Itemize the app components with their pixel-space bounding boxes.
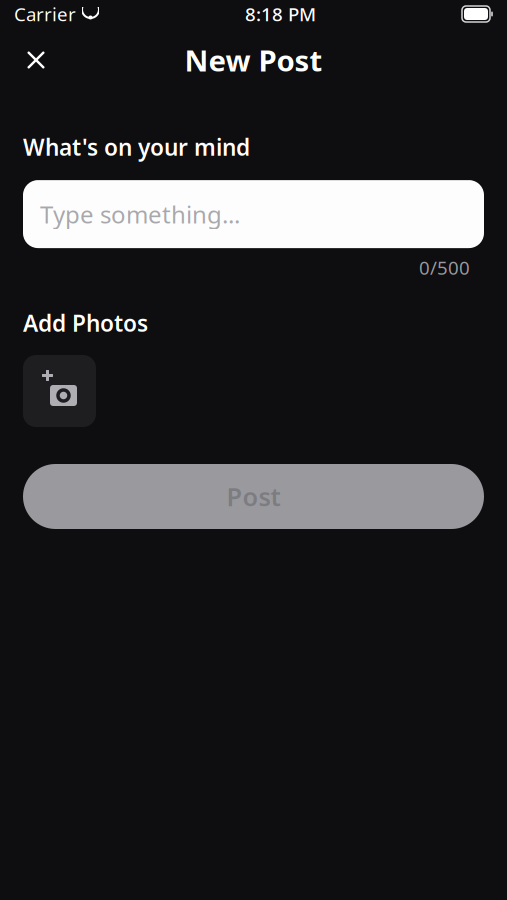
- staticText: 0/500: [419, 255, 470, 280]
- button[interactable]: Add Photos: [23, 355, 96, 427]
- staticText: Post: [226, 480, 280, 513]
- staticText: Type something...: [40, 198, 240, 230]
- staticText: Carrier: [14, 2, 76, 26]
- staticText: New Post: [184, 40, 322, 79]
- staticText: What's on your mind: [23, 132, 250, 162]
- button[interactable]: Post: [23, 464, 484, 529]
- button[interactable]: Close: [14, 38, 58, 82]
- staticText: 8:18 PM: [245, 2, 316, 26]
- staticText: Add Photos: [23, 308, 148, 338]
